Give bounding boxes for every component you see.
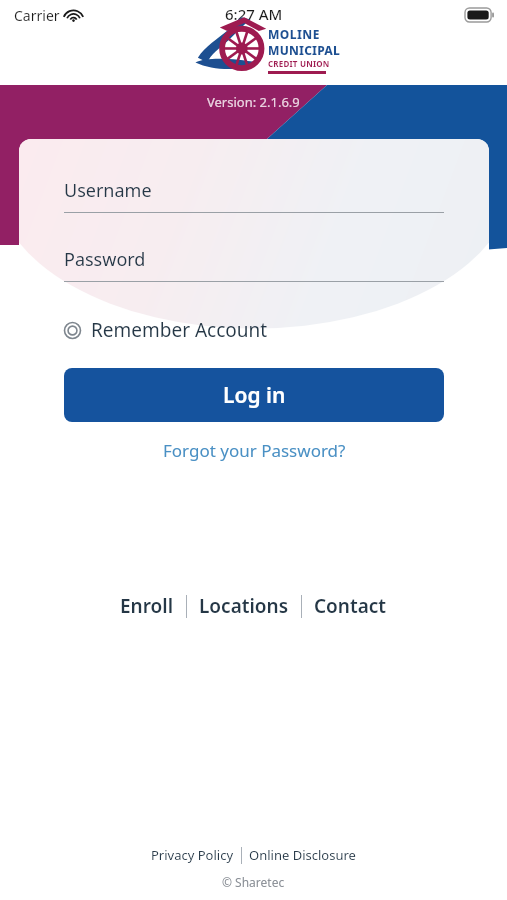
staticText: MOLINE xyxy=(268,26,320,42)
button[interactable]: Locations xyxy=(187,588,301,624)
button[interactable]: Privacy Policy xyxy=(144,843,241,867)
button[interactable]: Password xyxy=(64,247,444,282)
staticText: Online Disclosure xyxy=(249,846,356,864)
staticText: MUNICIPAL xyxy=(268,42,341,58)
staticText: Contact xyxy=(314,593,387,619)
staticText: Password xyxy=(64,247,146,272)
button[interactable]: Log in xyxy=(64,368,444,422)
staticText: Remember Account xyxy=(91,317,268,343)
staticText: Version: 2.1.6.9 xyxy=(207,93,300,111)
staticText: CREDIT UNION xyxy=(268,58,330,69)
button[interactable]: Online Disclosure xyxy=(242,843,363,867)
staticText: © Sharetec xyxy=(222,874,285,890)
staticText: Locations xyxy=(199,593,289,619)
button[interactable]: Contact xyxy=(302,588,399,624)
staticText: Forgot your Password? xyxy=(163,439,346,462)
staticText: Log in xyxy=(223,381,286,410)
button[interactable]: Forgot your Password? xyxy=(155,435,354,466)
staticText: Privacy Policy xyxy=(151,846,234,864)
button[interactable]: Remember Account xyxy=(64,313,268,347)
staticText: Username xyxy=(64,178,152,203)
staticText: Enroll xyxy=(120,593,174,619)
button[interactable]: Enroll xyxy=(108,588,186,624)
staticText: Carrier xyxy=(14,6,60,25)
staticText: 6:27 AM xyxy=(225,4,283,24)
button[interactable]: Username xyxy=(64,178,444,213)
